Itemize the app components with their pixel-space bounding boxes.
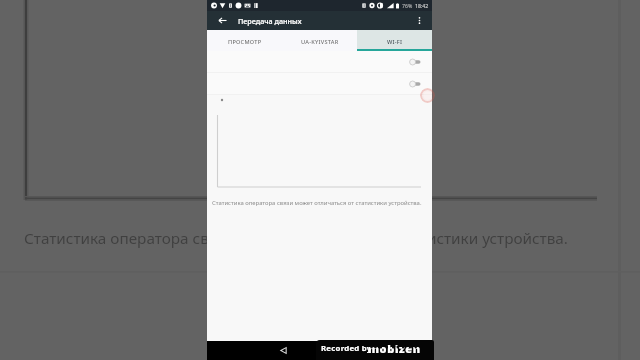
other: Toggle: [409, 78, 423, 90]
button[interactable]: Toggle: [207, 73, 432, 94]
button[interactable]: Back: [214, 12, 231, 29]
button[interactable]: WI-FI: [357, 30, 432, 51]
staticText: ПРОСМОТР: [228, 38, 262, 46]
staticText: WI-FI: [387, 38, 403, 46]
button[interactable]: Home: [306, 341, 346, 360]
button[interactable]: ПРОСМОТР: [207, 30, 282, 51]
staticText: 18:42: [415, 2, 429, 9]
button[interactable]: Recents: [355, 341, 395, 360]
staticText: 76%: [402, 2, 413, 9]
staticText: Статистика оператора связи может отличат…: [212, 199, 437, 207]
button[interactable]: Toggle: [207, 51, 432, 72]
staticText: mobizen: [368, 341, 421, 354]
button[interactable]: More options: [411, 12, 428, 29]
button[interactable]: Recorded by Mobizen: [316, 340, 434, 360]
staticText: Recorded by: [321, 343, 372, 354]
button[interactable]: Back: [263, 341, 303, 360]
button[interactable]: Recording control: [420, 88, 435, 103]
staticText: Статистика оператора связи может отличат…: [24, 228, 640, 249]
staticText: UA-KYIVSTAR: [301, 38, 339, 46]
button[interactable]: UA-KYIVSTAR: [282, 30, 357, 51]
staticText: Передача данных: [238, 16, 302, 26]
other: Toggle: [409, 56, 423, 68]
